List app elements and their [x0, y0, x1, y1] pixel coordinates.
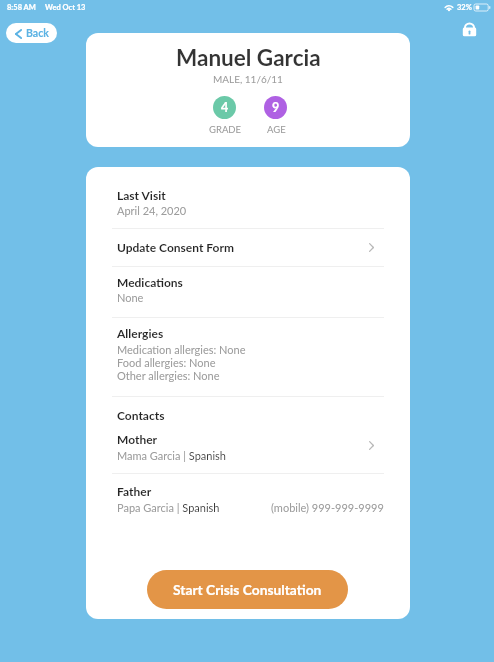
- staticText: Mother: [117, 432, 158, 446]
- button[interactable]: Start Crisis Consultation: [147, 570, 348, 609]
- button[interactable]: Back: [6, 23, 57, 43]
- staticText: Medications: [117, 275, 183, 289]
- staticText: Back: [26, 27, 49, 40]
- button[interactable]: Mother: [86, 432, 410, 470]
- staticText: Allergies: [117, 326, 164, 340]
- staticText: (mobile) 999-999-9999: [271, 501, 384, 514]
- staticText: MALE, 11/6/11: [213, 73, 283, 85]
- staticText: 8:58 AM: [7, 3, 36, 12]
- staticText: 32%: [457, 3, 472, 12]
- staticText: Contacts: [117, 408, 165, 422]
- staticText: Start Crisis Consultation: [173, 581, 322, 598]
- staticText: Father: [117, 484, 152, 498]
- staticText: Other allergies: None: [117, 369, 220, 382]
- staticText: Mama Garcia | Spanish: [117, 449, 227, 462]
- staticText: None: [117, 291, 144, 304]
- staticText: Wed Oct 13: [45, 3, 86, 12]
- staticText: Papa Garcia | Spanish: [117, 501, 220, 514]
- staticText: 9: [272, 100, 280, 115]
- button[interactable]: Update Consent Form: [86, 229, 410, 266]
- staticText: Manuel Garcia: [176, 44, 321, 71]
- button[interactable]: Lock: [462, 20, 477, 37]
- staticText: Medication allergies: None: [117, 343, 246, 356]
- staticText: Last Visit: [117, 188, 166, 202]
- staticText: Update Consent Form: [117, 240, 234, 254]
- staticText: 4: [221, 100, 229, 115]
- staticText: April 24, 2020: [117, 204, 187, 217]
- staticText: Food allergies: None: [117, 356, 216, 369]
- staticText: AGE: [267, 124, 286, 135]
- staticText: GRADE: [209, 124, 242, 135]
